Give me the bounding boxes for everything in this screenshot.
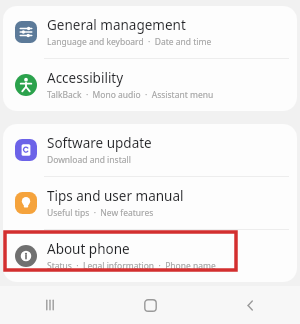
staticText: About phone: [47, 240, 130, 258]
staticText: Download and install: [47, 154, 131, 166]
button[interactable]: Recent apps: [0, 286, 100, 324]
button[interactable]: Accessibility: [3, 59, 297, 111]
button[interactable]: General management: [3, 6, 297, 58]
button[interactable]: Software update: [3, 124, 297, 176]
staticText: TalkBack · Mono audio · Assistant menu: [47, 89, 214, 101]
staticText: General management: [47, 16, 186, 34]
button[interactable]: About phone: [3, 230, 297, 282]
button[interactable]: Back: [200, 286, 300, 324]
staticText: Tips and user manual: [47, 187, 184, 205]
staticText: Status · Legal information · Phone name: [47, 260, 216, 272]
staticText: Software update: [47, 134, 152, 152]
button[interactable]: Tips and user manual: [3, 177, 297, 229]
staticText: Accessibility: [47, 69, 124, 87]
staticText: Useful tips · New features: [47, 207, 154, 219]
button[interactable]: Home: [100, 286, 200, 324]
staticText: Language and keyboard · Date and time: [47, 36, 212, 48]
